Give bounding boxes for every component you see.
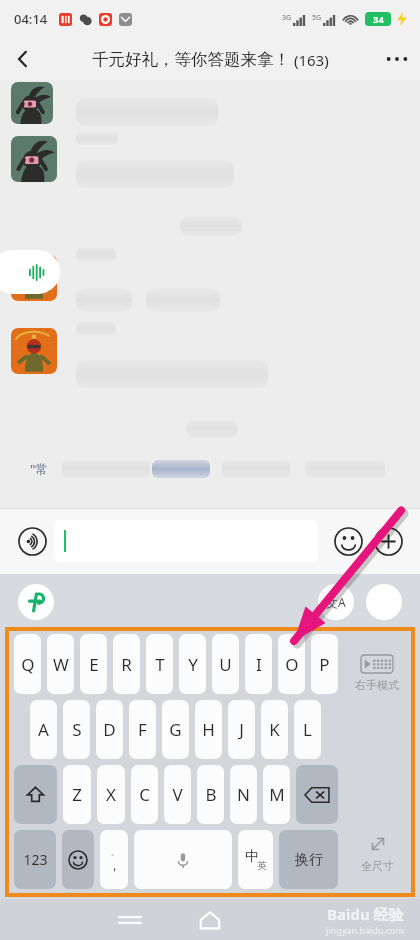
staticText: U [219, 653, 232, 676]
staticText: 文A [326, 594, 346, 610]
staticText: 千元好礼，等你答题来拿！ [92, 49, 290, 70]
staticText: ， [108, 857, 121, 873]
button[interactable] [54, 520, 318, 562]
staticText: 中 [245, 848, 259, 866]
button[interactable]: G [162, 700, 189, 759]
staticText: 04:14 [14, 10, 48, 28]
button[interactable]: Z [63, 765, 91, 824]
button[interactable]: V [164, 765, 191, 824]
button[interactable]: N [230, 765, 257, 824]
button[interactable]: B [197, 765, 224, 824]
button[interactable]: Full size [361, 833, 394, 873]
button[interactable]: Emoji [328, 521, 368, 561]
button[interactable]: S [63, 700, 90, 759]
staticText: O [285, 653, 299, 676]
button[interactable]: R [113, 634, 140, 694]
staticText: I [256, 653, 262, 676]
button[interactable]: E [80, 634, 107, 694]
button[interactable]: K [261, 700, 288, 759]
button[interactable]: Settings [366, 584, 402, 620]
staticText: F [138, 718, 147, 741]
staticText: "常 [30, 460, 49, 478]
staticText: 全尺寸 [361, 859, 394, 873]
staticText: Y [188, 653, 198, 676]
staticText: 3G [282, 13, 292, 23]
button[interactable]: X [97, 765, 125, 824]
staticText: S [72, 718, 82, 741]
button[interactable]: 。 [100, 830, 128, 889]
staticText: T [155, 653, 165, 676]
staticText: jingyan.baidu.com [326, 924, 404, 936]
button[interactable]: Right hand mode [355, 655, 399, 692]
button[interactable]: F [129, 700, 156, 759]
staticText: L [303, 718, 312, 741]
staticText: J [239, 718, 244, 741]
staticText: 5G [312, 13, 322, 23]
button[interactable]: Voice input [12, 521, 52, 561]
staticText: D [103, 718, 116, 741]
staticText: R [121, 653, 132, 676]
button[interactable]: Space, voice input [134, 830, 232, 889]
button[interactable]: M [263, 765, 290, 824]
staticText: C [139, 783, 150, 806]
button[interactable]: W [47, 634, 74, 694]
button[interactable]: 换行 [279, 830, 338, 889]
button[interactable]: A [30, 700, 57, 759]
staticText: Q [21, 653, 35, 676]
button[interactable]: Translate [318, 584, 354, 620]
staticText: P [319, 653, 330, 676]
button[interactable]: Input method logo [18, 584, 54, 620]
button[interactable]: Backspace [296, 765, 338, 824]
button[interactable]: D [96, 700, 123, 759]
button[interactable]: Y [179, 634, 206, 694]
staticText: V [172, 783, 183, 806]
button[interactable]: I [245, 634, 272, 694]
button[interactable]: L [294, 700, 321, 759]
button[interactable]: Back [0, 38, 46, 80]
staticText: 34 [373, 13, 384, 26]
staticText: X [106, 783, 116, 806]
staticText: W [53, 653, 69, 676]
staticText: K [269, 718, 280, 741]
staticText: A [38, 718, 49, 741]
staticText: H [202, 718, 215, 741]
staticText: E [89, 653, 99, 676]
button[interactable]: P [311, 634, 338, 694]
button[interactable]: T [146, 634, 173, 694]
button[interactable]: Recent apps [110, 900, 150, 940]
staticText: (163) [290, 50, 329, 70]
button[interactable]: Emoji keyboard [62, 830, 94, 889]
staticText: 换行 [295, 851, 323, 869]
button[interactable]: C [131, 765, 158, 824]
button[interactable]: More functions [368, 521, 408, 561]
button[interactable]: U [212, 634, 239, 694]
staticText: Z [72, 783, 82, 806]
staticText: 123 [23, 850, 48, 869]
staticText: G [169, 718, 182, 741]
button[interactable]: H [195, 700, 222, 759]
button[interactable]: Shift [14, 765, 57, 824]
button[interactable]: O [278, 634, 305, 694]
button[interactable]: More options [374, 38, 420, 80]
staticText: Baidu 经验 [327, 904, 404, 924]
staticText: M [269, 783, 285, 806]
button[interactable]: Home [188, 899, 232, 940]
staticText: 右手模式 [355, 678, 399, 692]
staticText: 。 [111, 847, 119, 857]
staticText: 英 [257, 859, 267, 872]
button[interactable]: Chinese English toggle [238, 830, 273, 889]
button[interactable]: 123 [14, 830, 56, 889]
staticText: B [205, 783, 217, 806]
staticText: N [237, 783, 250, 806]
button[interactable]: Q [14, 634, 41, 694]
button[interactable]: J [228, 700, 255, 759]
